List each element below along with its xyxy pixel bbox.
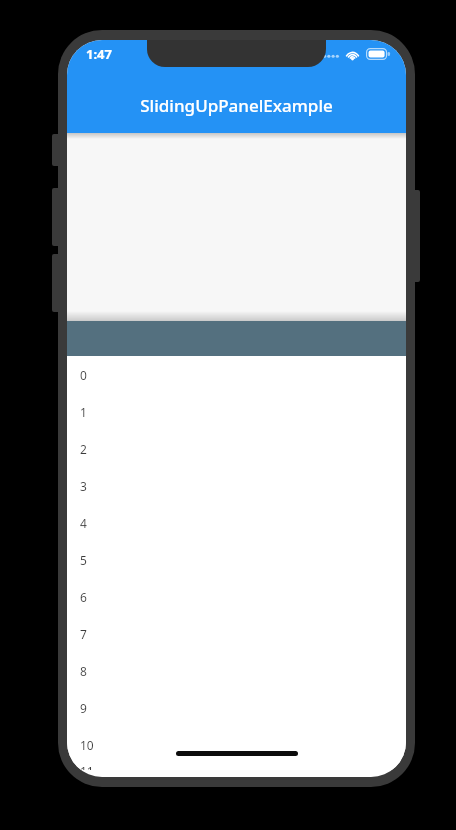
button[interactable]: 1 [67, 393, 406, 430]
button[interactable]: 9 [67, 689, 406, 726]
staticText: 6 [80, 589, 87, 605]
staticText: 5 [80, 552, 87, 568]
staticText: 3 [80, 478, 87, 494]
button[interactable]: 0 [67, 356, 406, 393]
staticText: SlidingUpPanelExample [67, 94, 406, 117]
staticText: 10 [80, 737, 94, 753]
staticText: 8 [80, 663, 87, 679]
button[interactable]: 10 [67, 726, 406, 763]
button[interactable]: 3 [67, 467, 406, 504]
button[interactable]: 8 [67, 652, 406, 689]
staticText: 4 [80, 515, 87, 531]
button[interactable]: 6 [67, 578, 406, 615]
button[interactable]: 2 [67, 430, 406, 467]
button[interactable]: 7 [67, 615, 406, 652]
staticText: 7 [80, 626, 87, 642]
staticText: 9 [80, 700, 87, 716]
staticText: 0 [80, 367, 87, 383]
button[interactable]: 11 [67, 763, 406, 770]
staticText: 2 [80, 441, 87, 457]
staticText: 11 [80, 763, 94, 770]
staticText: 1 [80, 404, 87, 420]
button[interactable]: 4 [67, 504, 406, 541]
staticText: 1:47 [86, 45, 112, 63]
button[interactable]: 5 [67, 541, 406, 578]
